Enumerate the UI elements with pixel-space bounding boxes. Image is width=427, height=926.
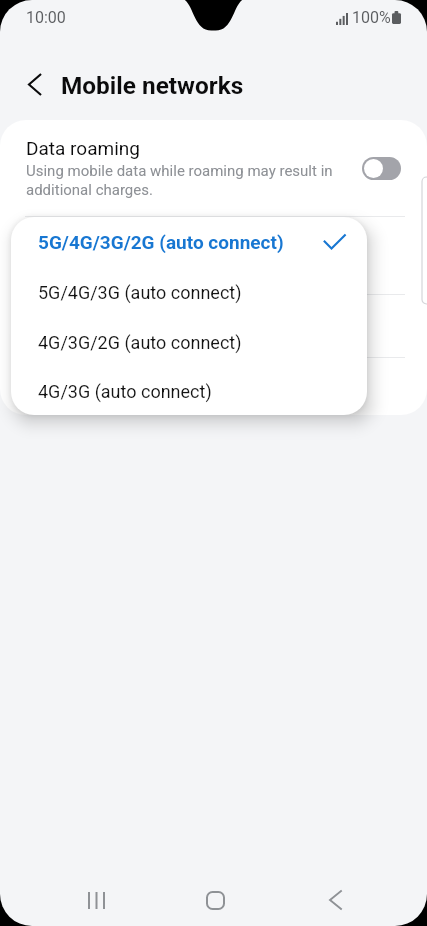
staticText: 4G/3G/2G (auto connect) [38, 332, 242, 353]
staticText: 5G/4G/3G (auto connect) [38, 282, 242, 303]
button[interactable]: 4G/3G (auto connect) [11, 367, 367, 415]
button[interactable]: Data roaming toggle, off [362, 157, 401, 180]
staticText: Mobile networks [61, 71, 244, 100]
button[interactable]: Home [183, 868, 247, 926]
staticText: 100% [352, 8, 391, 27]
staticText: 4G/3G (auto connect) [38, 381, 212, 402]
button[interactable]: Recents [64, 868, 128, 926]
button[interactable]: Data roaming [0, 120, 427, 216]
staticText: Data roaming [26, 137, 140, 159]
staticText: 10:00 [26, 8, 66, 27]
button[interactable]: Navigate up [12, 62, 56, 106]
button[interactable]: 4G/3G/2G (auto connect) [11, 317, 367, 367]
button[interactable]: Back [303, 868, 367, 926]
button[interactable]: 5G/4G/3G/2G (auto connect) [11, 217, 367, 267]
button[interactable]: 5G/4G/3G (auto connect) [11, 267, 367, 317]
staticText: 5G/4G/3G/2G (auto connect) [38, 231, 284, 253]
staticText: Using mobile data while roaming may resu… [26, 162, 354, 199]
